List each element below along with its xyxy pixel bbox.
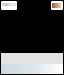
button[interactable] — [51, 1, 63, 10]
button[interactable] — [1, 1, 17, 10]
